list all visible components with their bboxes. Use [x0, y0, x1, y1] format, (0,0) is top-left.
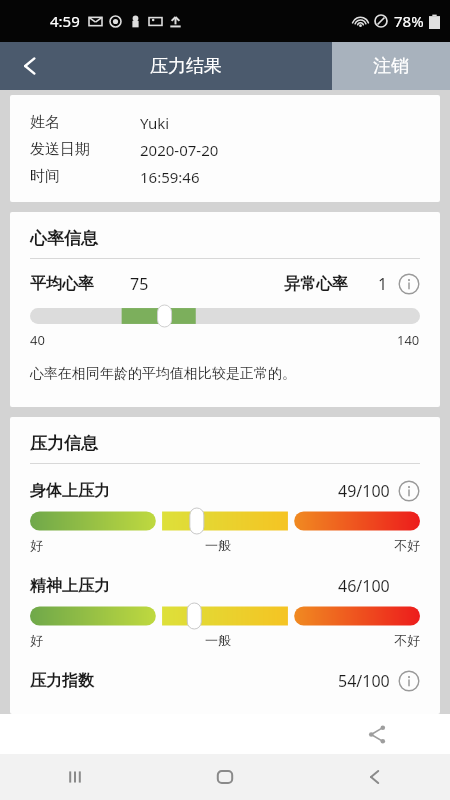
- staticText: 心率信息: [30, 228, 98, 249]
- staticText: 一般: [205, 632, 231, 648]
- staticText: 压力结果: [150, 55, 222, 78]
- staticText: 40: [30, 331, 45, 349]
- staticText: 54/100: [338, 670, 390, 692]
- staticText: 49/100: [338, 480, 390, 502]
- button[interactable]: Home: [150, 754, 300, 800]
- staticText: 压力指数: [30, 671, 94, 691]
- staticText: 异常心率: [284, 274, 348, 294]
- staticText: 78%: [394, 11, 424, 31]
- staticText: 75: [130, 273, 149, 295]
- button[interactable]: Share: [362, 719, 392, 749]
- staticText: 2020-07-20: [140, 140, 219, 160]
- button[interactable]: More info: [398, 670, 420, 692]
- staticText: 精神上压力: [30, 576, 110, 596]
- staticText: 身体上压力: [30, 481, 110, 501]
- staticText: 不好: [394, 537, 420, 553]
- staticText: 好: [30, 537, 43, 553]
- staticText: 时间: [30, 167, 60, 186]
- staticText: 不好: [394, 632, 420, 648]
- staticText: 心率在相同年龄的平均值相比较是正常的。: [30, 365, 296, 383]
- staticText: 好: [30, 632, 43, 648]
- staticText: 注销: [373, 55, 409, 78]
- staticText: 4:59: [50, 11, 80, 31]
- staticText: 1: [378, 273, 388, 295]
- staticText: 发送日期: [30, 140, 90, 159]
- staticText: 姓名: [30, 113, 60, 132]
- button[interactable]: More info: [398, 480, 420, 502]
- staticText: Yuki: [140, 113, 170, 133]
- button[interactable]: Recent apps: [0, 754, 150, 800]
- button[interactable]: Back: [300, 754, 450, 800]
- staticText: 16:59:46: [140, 167, 200, 187]
- staticText: 压力信息: [30, 433, 98, 454]
- staticText: 140: [397, 331, 420, 349]
- button[interactable]: 注销: [332, 42, 450, 90]
- button[interactable]: More info: [398, 273, 420, 295]
- staticText: 一般: [205, 537, 231, 553]
- staticText: 平均心率: [30, 274, 94, 294]
- button[interactable]: Back: [0, 42, 332, 90]
- staticText: 46/100: [338, 575, 390, 597]
